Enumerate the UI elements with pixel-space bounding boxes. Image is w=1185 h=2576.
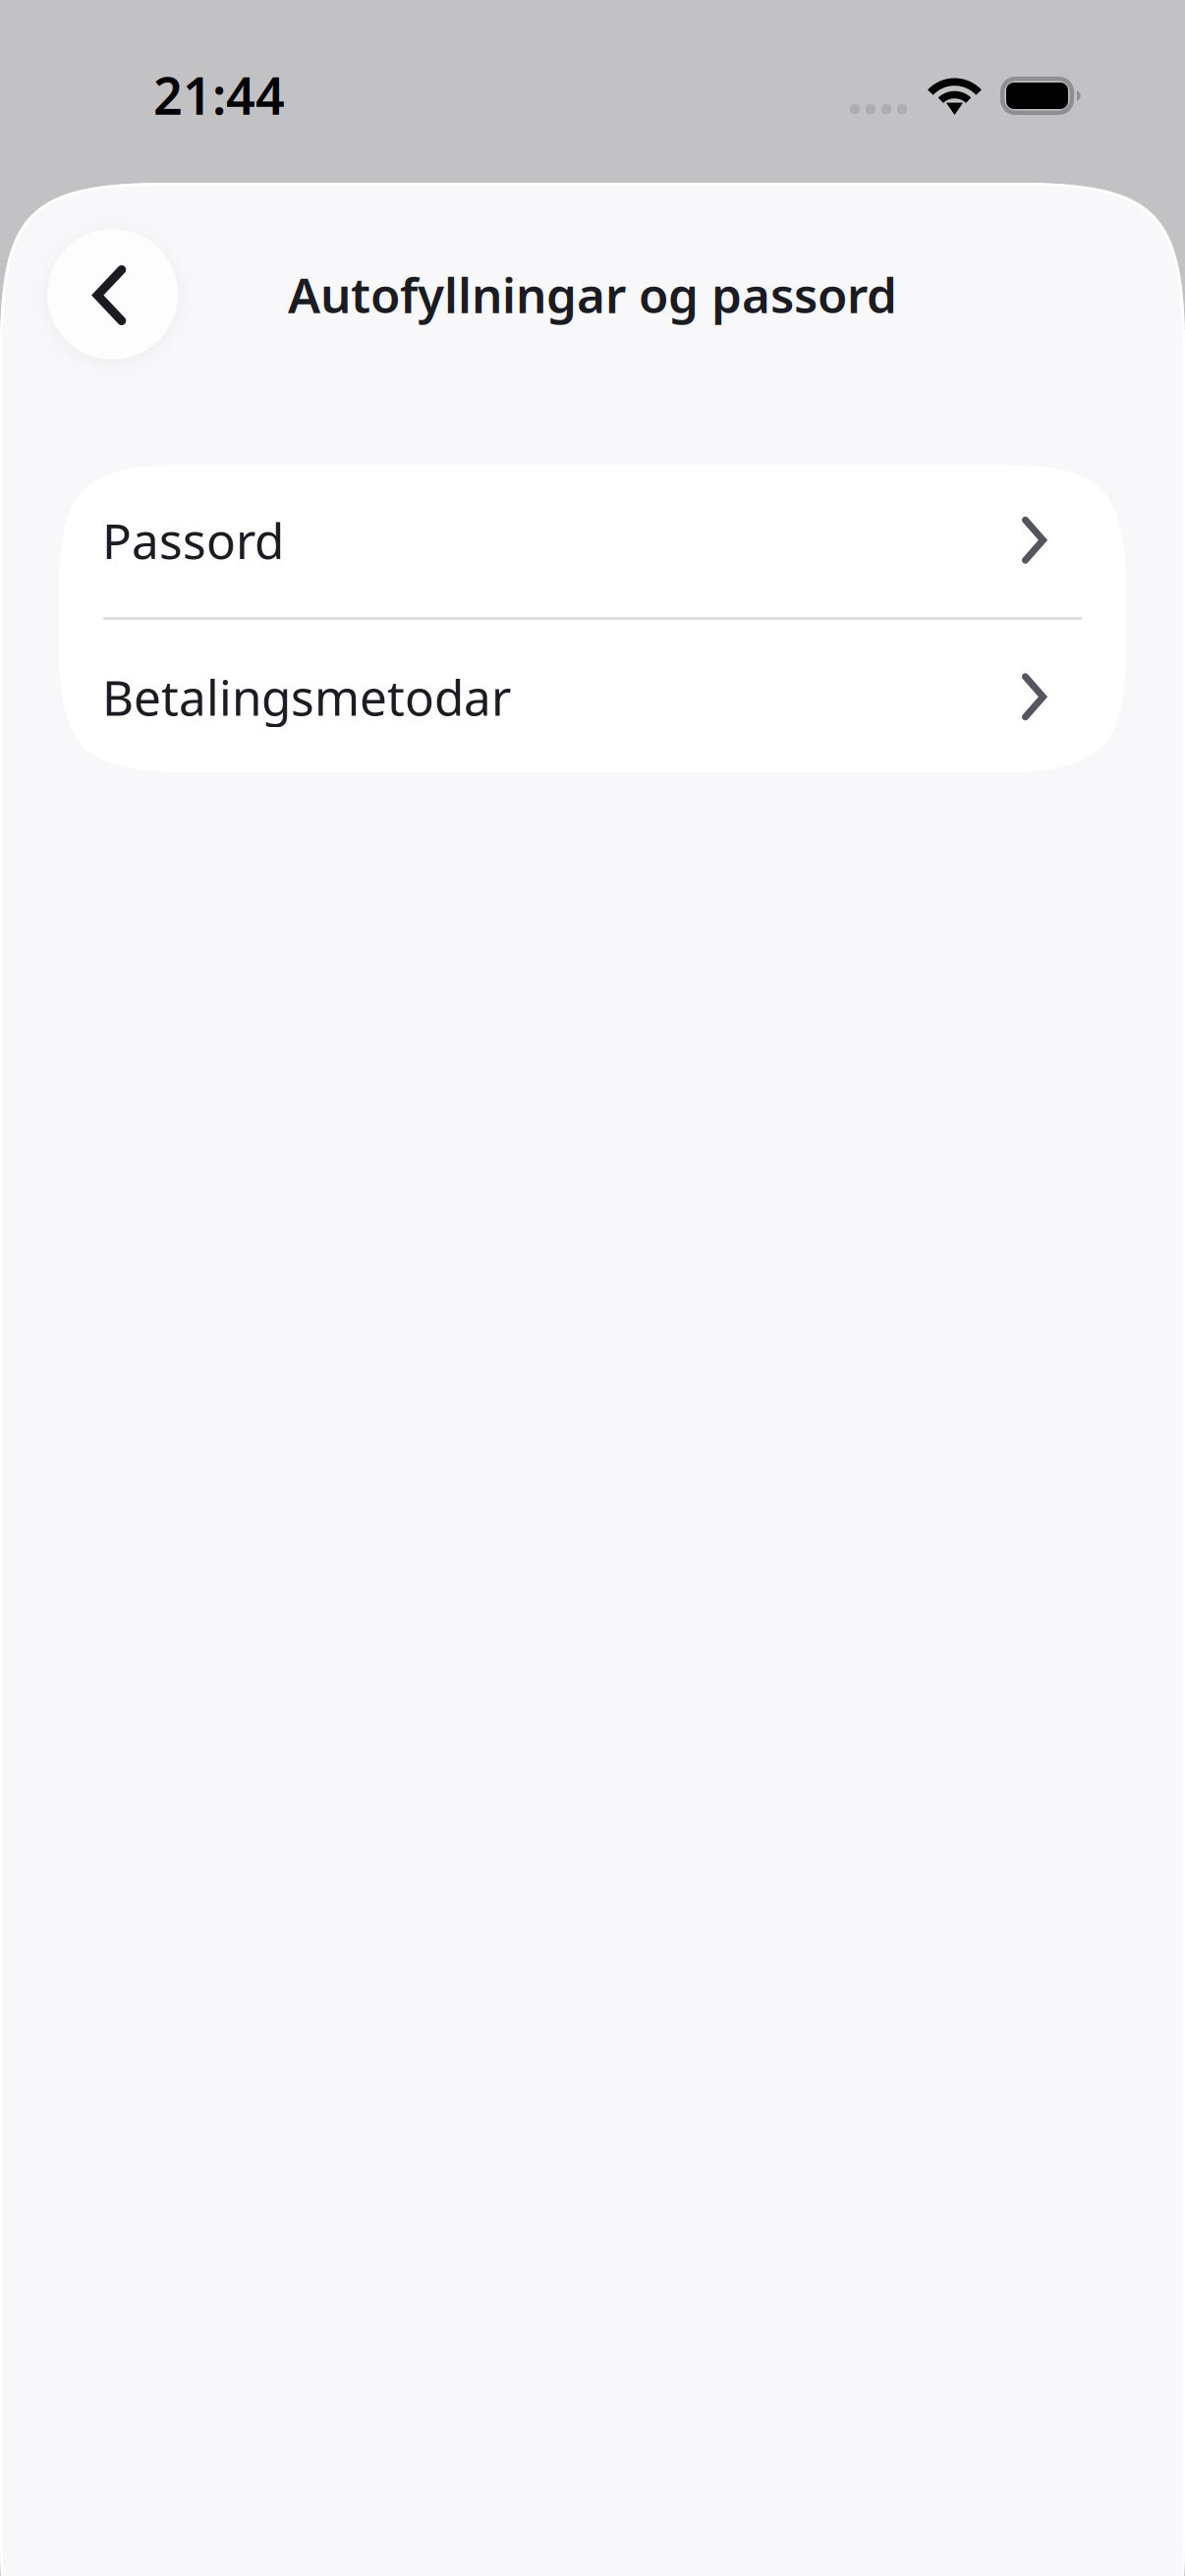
staticText: Autofyllningar og passord bbox=[288, 262, 897, 326]
staticText: 21:44 bbox=[153, 61, 285, 129]
button[interactable]: Betalingsmetodar bbox=[59, 620, 1126, 774]
staticText: Passord bbox=[102, 508, 284, 572]
button[interactable]: Back bbox=[47, 229, 178, 360]
button[interactable]: Passord bbox=[59, 463, 1126, 617]
staticText: Betalingsmetodar bbox=[102, 665, 511, 729]
